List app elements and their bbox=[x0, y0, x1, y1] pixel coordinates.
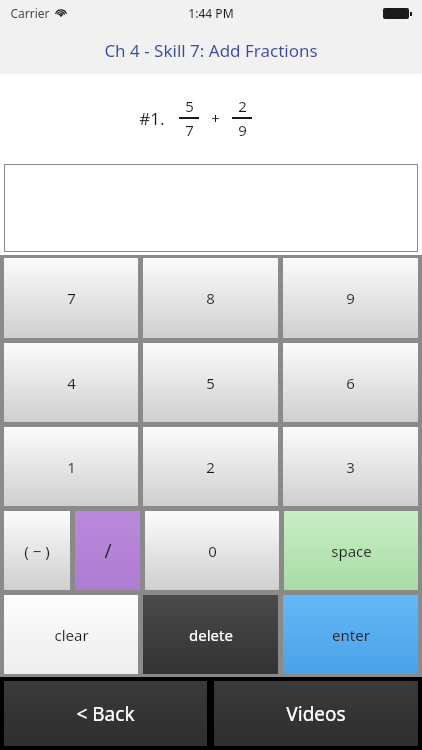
staticText: 0 bbox=[208, 541, 217, 561]
staticText: clear bbox=[54, 625, 89, 645]
staticText: space bbox=[331, 541, 372, 561]
staticText: 6 bbox=[346, 373, 355, 393]
staticText: 9 bbox=[238, 120, 247, 140]
button[interactable]: 3 bbox=[283, 427, 418, 506]
staticText: < Back bbox=[76, 701, 135, 727]
button[interactable]: 6 bbox=[283, 343, 418, 422]
staticText: 2 bbox=[238, 96, 247, 116]
button[interactable]: 1 bbox=[4, 427, 138, 506]
button[interactable]: space bbox=[284, 511, 418, 590]
button[interactable]: 4 bbox=[4, 343, 138, 422]
button[interactable]: delete bbox=[143, 595, 278, 674]
staticText: 1 bbox=[67, 457, 76, 477]
button[interactable]: 8 bbox=[143, 258, 278, 338]
button[interactable]: 2 bbox=[143, 427, 278, 506]
staticText: 7 bbox=[185, 120, 194, 140]
staticText: delete bbox=[189, 625, 233, 645]
staticText: 5 bbox=[185, 96, 194, 116]
staticText: 7 bbox=[67, 288, 76, 308]
staticText: + bbox=[211, 108, 220, 128]
staticText: 4 bbox=[67, 373, 76, 393]
button[interactable]: 9 bbox=[283, 258, 418, 338]
button[interactable]: Ch 4 - Skill 7: Add Fractions bbox=[0, 26, 422, 74]
staticText: Ch 4 - Skill 7: Add Fractions bbox=[104, 39, 318, 62]
staticText: 2 bbox=[206, 457, 215, 477]
button[interactable]: / bbox=[75, 511, 140, 590]
staticText: 5 bbox=[206, 373, 215, 393]
button[interactable]: clear bbox=[4, 595, 138, 674]
staticText: Carrier bbox=[10, 5, 50, 21]
staticText: ( − ) bbox=[24, 541, 50, 561]
button[interactable]: Videos bbox=[214, 681, 418, 746]
button[interactable]: 5 bbox=[143, 343, 278, 422]
staticText: 1:44 PM bbox=[188, 5, 234, 21]
staticText: enter bbox=[332, 625, 370, 645]
staticText: / bbox=[104, 538, 112, 564]
staticText: 3 bbox=[346, 457, 355, 477]
button[interactable]: ( − ) bbox=[4, 511, 70, 590]
button[interactable]: < Back bbox=[4, 681, 207, 746]
staticText: Videos bbox=[286, 701, 346, 727]
button[interactable]: 0 bbox=[145, 511, 279, 590]
staticText: #1. bbox=[139, 107, 165, 130]
staticText: 8 bbox=[206, 288, 215, 308]
button[interactable]: 7 bbox=[4, 258, 138, 338]
button[interactable]: enter bbox=[283, 595, 418, 674]
staticText: 9 bbox=[346, 288, 355, 308]
